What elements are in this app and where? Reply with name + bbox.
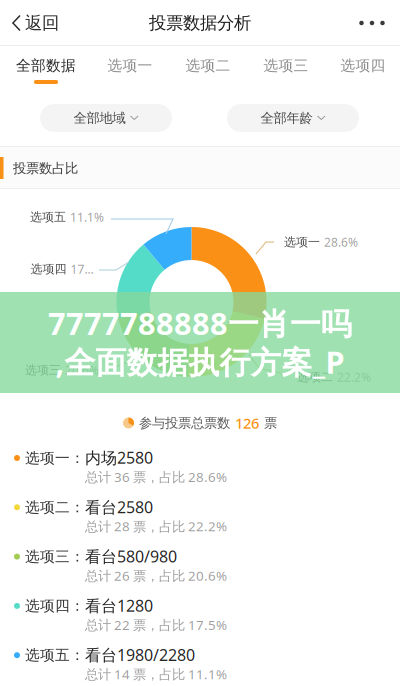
staticText: 11.1% <box>70 209 104 225</box>
button[interactable]: 返回 <box>0 0 74 46</box>
button[interactable]: 选项三： <box>0 546 400 590</box>
staticText: 28.6% <box>324 234 358 250</box>
staticText: 选项四： <box>25 597 85 615</box>
staticText: 22.2% <box>337 369 371 385</box>
staticText: 选项五： <box>25 646 85 664</box>
staticText: 选项三 <box>263 56 308 74</box>
staticText: ,全面数据执行方案_P <box>55 341 344 382</box>
staticText: 选项二 <box>185 56 230 74</box>
staticText: 看台580/980 <box>85 546 177 567</box>
staticText: 全部地域 <box>73 110 125 126</box>
staticText: 全部数据 <box>16 56 76 74</box>
button[interactable]: 选项三 <box>247 46 325 90</box>
staticText: 选项四 <box>340 56 385 74</box>
button[interactable]: 选项二 <box>169 46 247 90</box>
staticText: 投票数占比 <box>13 160 78 176</box>
staticText: 看台1280 <box>85 595 153 616</box>
button[interactable]: 选项四 <box>324 46 400 90</box>
staticText: 17... <box>70 261 93 277</box>
button[interactable]: 选项一 <box>91 46 169 90</box>
staticText: 选项二 <box>297 370 333 384</box>
staticText: 126 <box>235 413 259 433</box>
staticText: 7777788888一肖一吗 <box>48 303 352 343</box>
button[interactable]: 全部数据 <box>7 46 85 90</box>
staticText: 总计 22 票，占比 17.5% <box>85 616 227 634</box>
button[interactable]: 全部年龄 <box>227 104 359 132</box>
staticText: 看台1980/2280 <box>85 644 195 665</box>
button[interactable]: 选项一： <box>0 447 400 491</box>
staticText: 选项三 <box>25 363 61 377</box>
staticText: 票 <box>264 415 277 431</box>
staticText: 内场2580 <box>85 447 153 468</box>
staticText: 参与投票总票数 <box>139 415 230 431</box>
button[interactable]: 更多 <box>0 0 400 46</box>
staticText: 选项五 <box>30 210 66 224</box>
staticText: 总计 36 票，占比 28.6% <box>85 468 227 486</box>
staticText: 选项三： <box>25 548 85 566</box>
staticText: 选项一 <box>284 235 320 249</box>
staticText: 20.6% <box>65 362 99 378</box>
button[interactable]: 选项五： <box>0 644 400 686</box>
staticText: 选项二： <box>25 498 85 516</box>
staticText: 投票数据分析 <box>149 12 251 34</box>
button[interactable]: 全部地域 <box>40 104 172 132</box>
staticText: 选项一 <box>107 56 152 74</box>
staticText: 看台2580 <box>85 496 153 517</box>
staticText: 总计 14 票，占比 11.1% <box>85 665 227 683</box>
button[interactable]: 选项二： <box>0 496 400 540</box>
staticText: 全部年龄 <box>260 110 312 126</box>
staticText: 选项四 <box>30 262 66 276</box>
staticText: 选项一： <box>25 449 85 467</box>
staticText: 总计 26 票，占比 20.6% <box>85 567 227 584</box>
staticText: 总计 28 票，占比 22.2% <box>85 517 227 535</box>
button[interactable]: 选项四： <box>0 595 400 639</box>
staticText: 返回 <box>25 12 59 34</box>
